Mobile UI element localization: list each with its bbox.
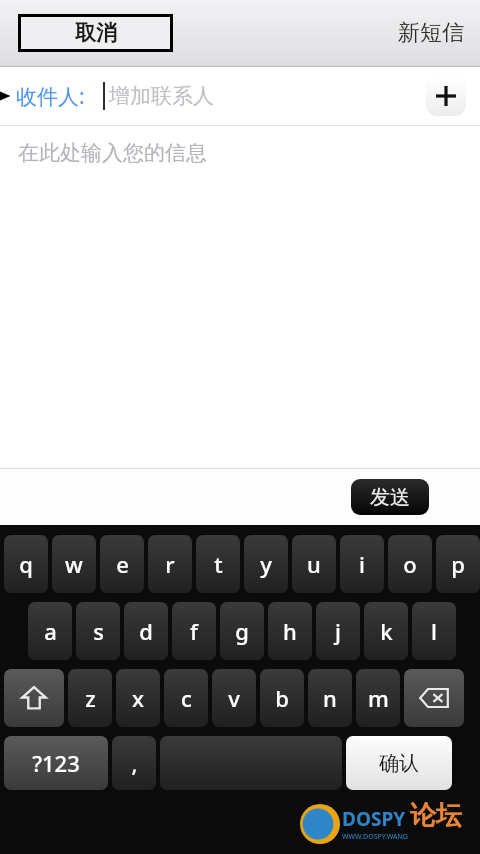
staticText: l xyxy=(431,616,437,646)
staticText: s xyxy=(93,616,104,646)
staticText: 新短信 xyxy=(398,19,464,47)
staticText: WWW.DOSPY.WANG xyxy=(342,832,408,842)
button[interactable]: u xyxy=(292,535,336,593)
button[interactable]: n xyxy=(308,669,352,727)
button[interactable]: e xyxy=(100,535,144,593)
staticText: i xyxy=(359,549,365,579)
staticText: q xyxy=(19,549,33,579)
button[interactable]: 取消 xyxy=(18,14,173,52)
staticText: d xyxy=(139,616,153,646)
staticText: , xyxy=(131,748,138,778)
staticText: j xyxy=(335,616,341,646)
staticText: o xyxy=(403,549,417,579)
staticText: h xyxy=(283,616,297,646)
button[interactable]: t xyxy=(196,535,240,593)
staticText: u xyxy=(307,549,321,579)
button[interactable]: o xyxy=(388,535,432,593)
button[interactable]: 确认 xyxy=(346,736,452,790)
staticText: c xyxy=(181,683,192,713)
button[interactable]: r xyxy=(148,535,192,593)
staticText: p xyxy=(451,549,465,579)
button[interactable]: s xyxy=(76,602,120,660)
button[interactable]: l xyxy=(412,602,456,660)
staticText: 增加联系人 xyxy=(109,83,214,109)
staticText: z xyxy=(85,683,96,713)
staticText: 论坛 xyxy=(410,799,462,832)
button[interactable]: ?123 xyxy=(4,736,108,790)
button[interactable]: 发送 xyxy=(351,479,429,515)
staticText: 确认 xyxy=(379,751,419,776)
button[interactable] xyxy=(160,736,342,790)
button[interactable]: b xyxy=(260,669,304,727)
button[interactable]: z xyxy=(68,669,112,727)
button[interactable]: d xyxy=(124,602,168,660)
button[interactable]: y xyxy=(244,535,288,593)
button[interactable]: i xyxy=(340,535,384,593)
staticText: e xyxy=(116,549,129,579)
button[interactable]: p xyxy=(436,535,480,593)
staticText: t xyxy=(214,549,223,579)
button[interactable]: a xyxy=(28,602,72,660)
staticText: n xyxy=(323,683,337,713)
staticText: y xyxy=(260,549,272,579)
staticText: r xyxy=(165,549,175,579)
staticText: 在此处输入您的信息 xyxy=(18,140,207,166)
button[interactable] xyxy=(4,669,64,727)
button[interactable]: , xyxy=(112,736,156,790)
staticText xyxy=(248,748,254,778)
button[interactable]: w xyxy=(52,535,96,593)
button[interactable]: j xyxy=(316,602,360,660)
staticText: ?123 xyxy=(32,748,80,778)
button[interactable]: f xyxy=(172,602,216,660)
button[interactable]: Add contact xyxy=(426,76,466,116)
staticText: v xyxy=(228,683,240,713)
button[interactable] xyxy=(404,669,464,727)
staticText: m xyxy=(368,683,389,713)
button[interactable]: h xyxy=(268,602,312,660)
button[interactable]: c xyxy=(164,669,208,727)
staticText: x xyxy=(132,683,144,713)
button[interactable]: x xyxy=(116,669,160,727)
button[interactable]: q xyxy=(4,535,48,593)
staticText: 收件人: xyxy=(16,82,85,111)
button[interactable]: v xyxy=(212,669,256,727)
staticText: 发送 xyxy=(370,485,410,510)
staticText: k xyxy=(380,616,393,646)
button[interactable]: m xyxy=(356,669,400,727)
staticText: b xyxy=(275,683,289,713)
staticText: a xyxy=(44,616,57,646)
staticText: g xyxy=(235,616,249,646)
staticText: DOSPY xyxy=(342,806,406,832)
staticText: w xyxy=(65,549,83,579)
button[interactable]: k xyxy=(364,602,408,660)
button[interactable]: 在此处输入您的信息 xyxy=(0,126,480,468)
staticText: 取消 xyxy=(75,20,117,46)
staticText: f xyxy=(190,616,198,646)
button[interactable]: g xyxy=(220,602,264,660)
